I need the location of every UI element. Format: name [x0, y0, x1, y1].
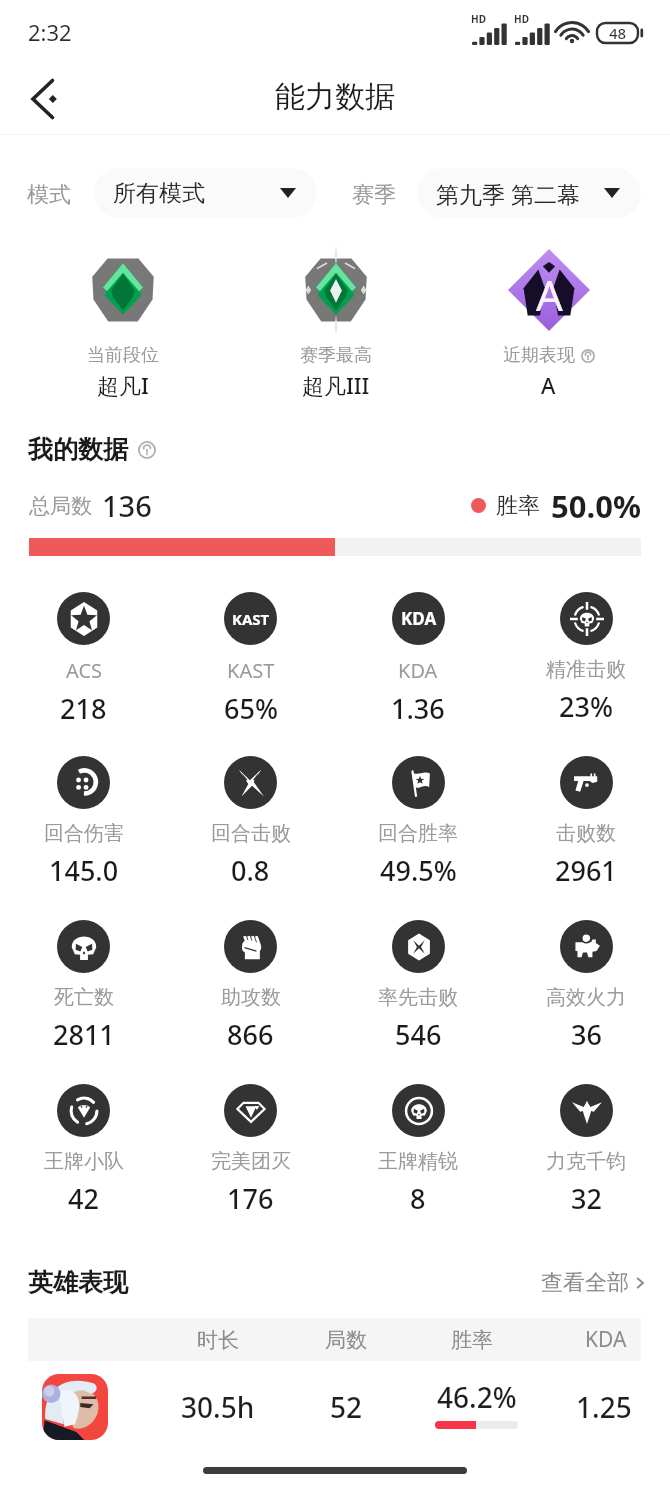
- staticText: 49.5%: [380, 852, 457, 889]
- staticText: KAST: [227, 657, 275, 684]
- staticText: 超凡I: [97, 370, 149, 400]
- staticText: 36: [571, 1016, 602, 1053]
- staticText: 近期表现: [503, 344, 575, 367]
- staticText: 第九季 第二幕: [436, 178, 580, 209]
- staticText: 回合胜率: [378, 821, 458, 846]
- staticText: 2:32: [28, 17, 72, 47]
- staticText: 英雄表现: [28, 1267, 128, 1298]
- button[interactable]: Back: [20, 71, 76, 127]
- button[interactable]: 死亡数: [0, 920, 167, 1053]
- staticText: 胜率: [496, 492, 540, 520]
- staticText: 赛季: [352, 181, 396, 209]
- staticText: KDA: [401, 607, 437, 630]
- button[interactable]: 力克千钧: [502, 1084, 670, 1217]
- staticText: 赛季最高: [300, 344, 372, 367]
- staticText: 30.5h: [181, 1388, 255, 1426]
- staticText: 超凡III: [302, 370, 370, 400]
- staticText: ACS: [66, 657, 102, 684]
- button[interactable]: 击败数: [502, 756, 670, 889]
- staticText: 总局数: [29, 493, 92, 519]
- staticText: 218: [60, 690, 107, 727]
- staticText: 32: [571, 1180, 602, 1217]
- button[interactable]: 助攻数: [167, 920, 334, 1053]
- staticText: 23%: [559, 688, 613, 725]
- staticText: 65%: [224, 690, 278, 727]
- staticText: 胜率: [451, 1327, 493, 1353]
- button[interactable]: 回合胜率: [334, 756, 502, 889]
- button[interactable]: 第九季 第二幕: [417, 168, 641, 218]
- staticText: 0.8: [231, 852, 270, 889]
- staticText: 回合击败: [211, 821, 291, 846]
- staticText: A: [541, 370, 556, 400]
- staticText: 1.36: [391, 690, 445, 727]
- staticText: 击败数: [556, 821, 616, 846]
- staticText: 48: [609, 23, 627, 43]
- staticText: 率先击败: [378, 985, 458, 1010]
- staticText: 力克千钧: [546, 1149, 626, 1174]
- staticText: 时长: [197, 1327, 239, 1353]
- button[interactable]: 王牌精锐: [334, 1084, 502, 1217]
- button[interactable]: 完美团灭: [167, 1084, 334, 1217]
- staticText: 高效火力: [546, 985, 626, 1010]
- staticText: 模式: [27, 181, 71, 209]
- button[interactable]: KDA: [334, 592, 502, 727]
- button[interactable]: 回合伤害: [0, 756, 167, 889]
- staticText: 1.25: [576, 1388, 632, 1426]
- button[interactable]: 查看全部: [541, 1269, 648, 1297]
- staticText: 当前段位: [87, 344, 159, 367]
- staticText: 136: [102, 486, 152, 525]
- staticText: HD: [514, 12, 529, 26]
- button[interactable]: 回合击败: [167, 756, 334, 889]
- staticText: 52: [330, 1388, 363, 1426]
- staticText: 王牌小队: [44, 1149, 124, 1174]
- button[interactable]: 所有模式: [94, 168, 317, 218]
- button[interactable]: ACS: [0, 592, 167, 727]
- staticText: 回合伤害: [44, 821, 124, 846]
- staticText: 完美团灭: [211, 1149, 291, 1174]
- staticText: HD: [471, 12, 486, 26]
- staticText: 546: [395, 1016, 442, 1053]
- staticText: 王牌精锐: [378, 1149, 458, 1174]
- button[interactable]: KAST: [167, 592, 334, 727]
- staticText: KAST: [232, 609, 270, 629]
- staticText: 局数: [325, 1327, 367, 1353]
- staticText: 50.0%: [551, 485, 641, 525]
- staticText: 查看全部: [541, 1269, 629, 1297]
- button[interactable]: 高效火力: [502, 920, 670, 1053]
- staticText: KDA: [585, 1325, 627, 1354]
- staticText: 我的数据: [28, 434, 128, 465]
- staticText: 2961: [555, 852, 617, 889]
- button[interactable]: 30.5h: [28, 1361, 641, 1453]
- staticText: 2811: [53, 1016, 115, 1053]
- staticText: 42: [68, 1180, 99, 1217]
- staticText: 46.2%: [437, 1378, 517, 1416]
- staticText: KDA: [398, 657, 438, 684]
- button[interactable]: 率先击败: [334, 920, 502, 1053]
- staticText: 助攻数: [221, 985, 281, 1010]
- staticText: 所有模式: [113, 179, 205, 208]
- staticText: 8: [410, 1180, 426, 1217]
- staticText: A: [536, 266, 563, 323]
- button[interactable]: 王牌小队: [0, 1084, 167, 1217]
- staticText: 精准击败: [546, 657, 626, 682]
- staticText: 866: [227, 1016, 274, 1053]
- staticText: 176: [227, 1180, 274, 1217]
- staticText: 145.0: [49, 852, 119, 889]
- button[interactable]: 精准击败: [502, 592, 670, 725]
- staticText: 死亡数: [54, 985, 114, 1010]
- staticText: 能力数据: [275, 78, 395, 116]
